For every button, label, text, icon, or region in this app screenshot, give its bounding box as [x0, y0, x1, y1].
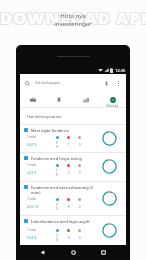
button[interactable]: Portfölj: [20, 92, 46, 107]
staticText: 5: [68, 171, 70, 175]
button[interactable]: Back: [38, 248, 47, 257]
button[interactable]: Recents: [99, 248, 108, 257]
staticText: DOWNLOAD APK: [0, 7, 145, 29]
staticText: 20: [56, 234, 59, 242]
staticText: Mest ägda fonderna: [31, 128, 69, 133]
staticText: 0: [79, 171, 81, 175]
staticText: 6: [68, 236, 70, 240]
button[interactable]: Fonderna med högst rating: [20, 153, 126, 181]
staticText: 59: [56, 141, 59, 149]
staticText: 1 mån: [27, 197, 37, 201]
staticText: 4,33 %: [27, 171, 37, 175]
staticText: 22,61 %: [27, 205, 39, 209]
button[interactable]: Marknad: [72, 92, 99, 107]
button[interactable]: Fonderna med bäst avkastning (3 mån): [20, 182, 126, 215]
button[interactable]: Utforska: [99, 92, 126, 107]
button[interactable]: Home: [69, 248, 78, 257]
staticText: 5,54 %: [27, 236, 37, 240]
button[interactable]: Sök värdepapper: [20, 74, 126, 92]
button[interactable]: More options: [116, 79, 121, 88]
staticText: Fonderna med bäst avkastning (3 mån): [31, 185, 94, 195]
staticText: 19: [56, 169, 59, 177]
staticText: DOWNLOAD APK: [0, 6, 146, 28]
staticText: 0: [79, 236, 81, 240]
staticText: Hitta nya: [60, 12, 86, 20]
staticText: DOWNLOAD APK: [0, 5, 145, 27]
staticText: 1 mån: [27, 228, 37, 232]
staticText: Sök värdepapper: [35, 81, 61, 85]
staticText: DOWNLOAD APK: [1, 7, 146, 29]
staticText: 0: [79, 205, 81, 209]
button[interactable]: Indexfonderna med lägst avgift: [20, 216, 126, 245]
staticText: DOWNLOAD APK: [1, 5, 146, 27]
staticText: Indexfonderna med lägst avgift: [31, 219, 90, 224]
button[interactable]: Mest ägda fonderna: [20, 125, 126, 152]
staticText: 20: [56, 203, 59, 211]
staticText: investeringar: [54, 20, 92, 28]
staticText: 1 mån: [27, 135, 37, 139]
staticText: Handelsinspiration: [27, 114, 62, 119]
button[interactable]: Bevakningar: [46, 92, 72, 107]
staticText: Fonderna med högst rating: [31, 156, 82, 161]
staticText: 6,24 %: [27, 143, 37, 147]
button[interactable]: Voice search: [104, 81, 109, 86]
staticText: 12:36: [115, 68, 126, 73]
staticText: Utforska: [106, 104, 119, 107]
staticText: 8: [68, 205, 70, 209]
staticText: 1: [68, 143, 70, 147]
staticText: 1 mån: [27, 163, 37, 167]
staticText: 0: [79, 143, 81, 147]
